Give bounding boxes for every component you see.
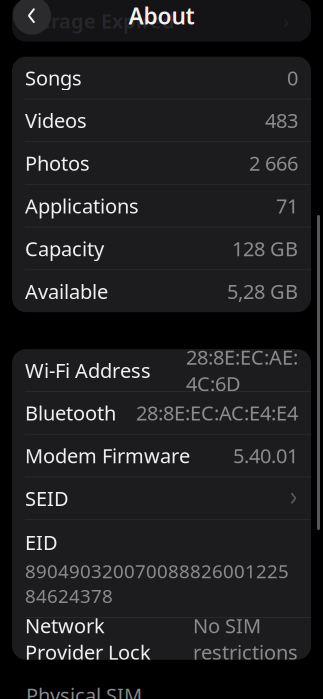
staticText: 5,28 GB — [227, 278, 298, 304]
staticText: Capacity — [25, 235, 104, 262]
staticText: EID — [25, 529, 58, 556]
staticText: No SIM restrictions — [193, 612, 298, 665]
button[interactable]: Photos — [12, 142, 311, 184]
staticText: 89049032007008882600122584624378 — [25, 558, 289, 608]
staticText: Modem Firmware — [25, 442, 190, 469]
button[interactable]: Applications — [12, 185, 311, 227]
button[interactable]: Wi-Fi Address — [12, 349, 311, 391]
staticText: 128 GB — [232, 235, 298, 262]
staticText: Physical SIM — [26, 682, 142, 699]
button[interactable]: Back — [13, 0, 51, 35]
staticText: Network Provider Lock — [25, 612, 151, 665]
button[interactable]: Network Provider Lock — [12, 618, 311, 660]
staticText: Applications — [25, 192, 139, 219]
button[interactable]: Modem Firmware — [12, 435, 311, 477]
staticText: 28:8E:EC:AC:E4:E4 — [136, 400, 298, 426]
staticText: SEID — [25, 485, 69, 512]
staticText: About — [128, 1, 194, 31]
button[interactable]: Songs — [12, 57, 311, 99]
button[interactable]: EID — [12, 520, 311, 617]
button[interactable]: SEID — [12, 477, 311, 519]
staticText: 71 — [276, 192, 298, 219]
button[interactable]: Available — [12, 270, 311, 312]
staticText: 5.40.01 — [233, 442, 298, 469]
staticText: …rage Expired — [34, 7, 175, 34]
button[interactable]: Capacity — [12, 227, 311, 269]
staticText: Photos — [25, 150, 90, 176]
staticText: 2 666 — [249, 150, 298, 176]
button[interactable]: Videos — [12, 99, 311, 141]
staticText: Bluetooth — [25, 400, 116, 426]
staticText: Wi-Fi Address — [25, 357, 151, 383]
staticText: Songs — [25, 64, 82, 91]
staticText: 483 — [265, 107, 298, 134]
staticText: 28:8E:EC:AE:4C:6D — [186, 344, 298, 397]
staticText: Available — [25, 278, 108, 304]
staticText: 0 — [287, 64, 298, 91]
staticText: Videos — [25, 107, 87, 134]
button[interactable]: Bluetooth — [12, 392, 311, 434]
